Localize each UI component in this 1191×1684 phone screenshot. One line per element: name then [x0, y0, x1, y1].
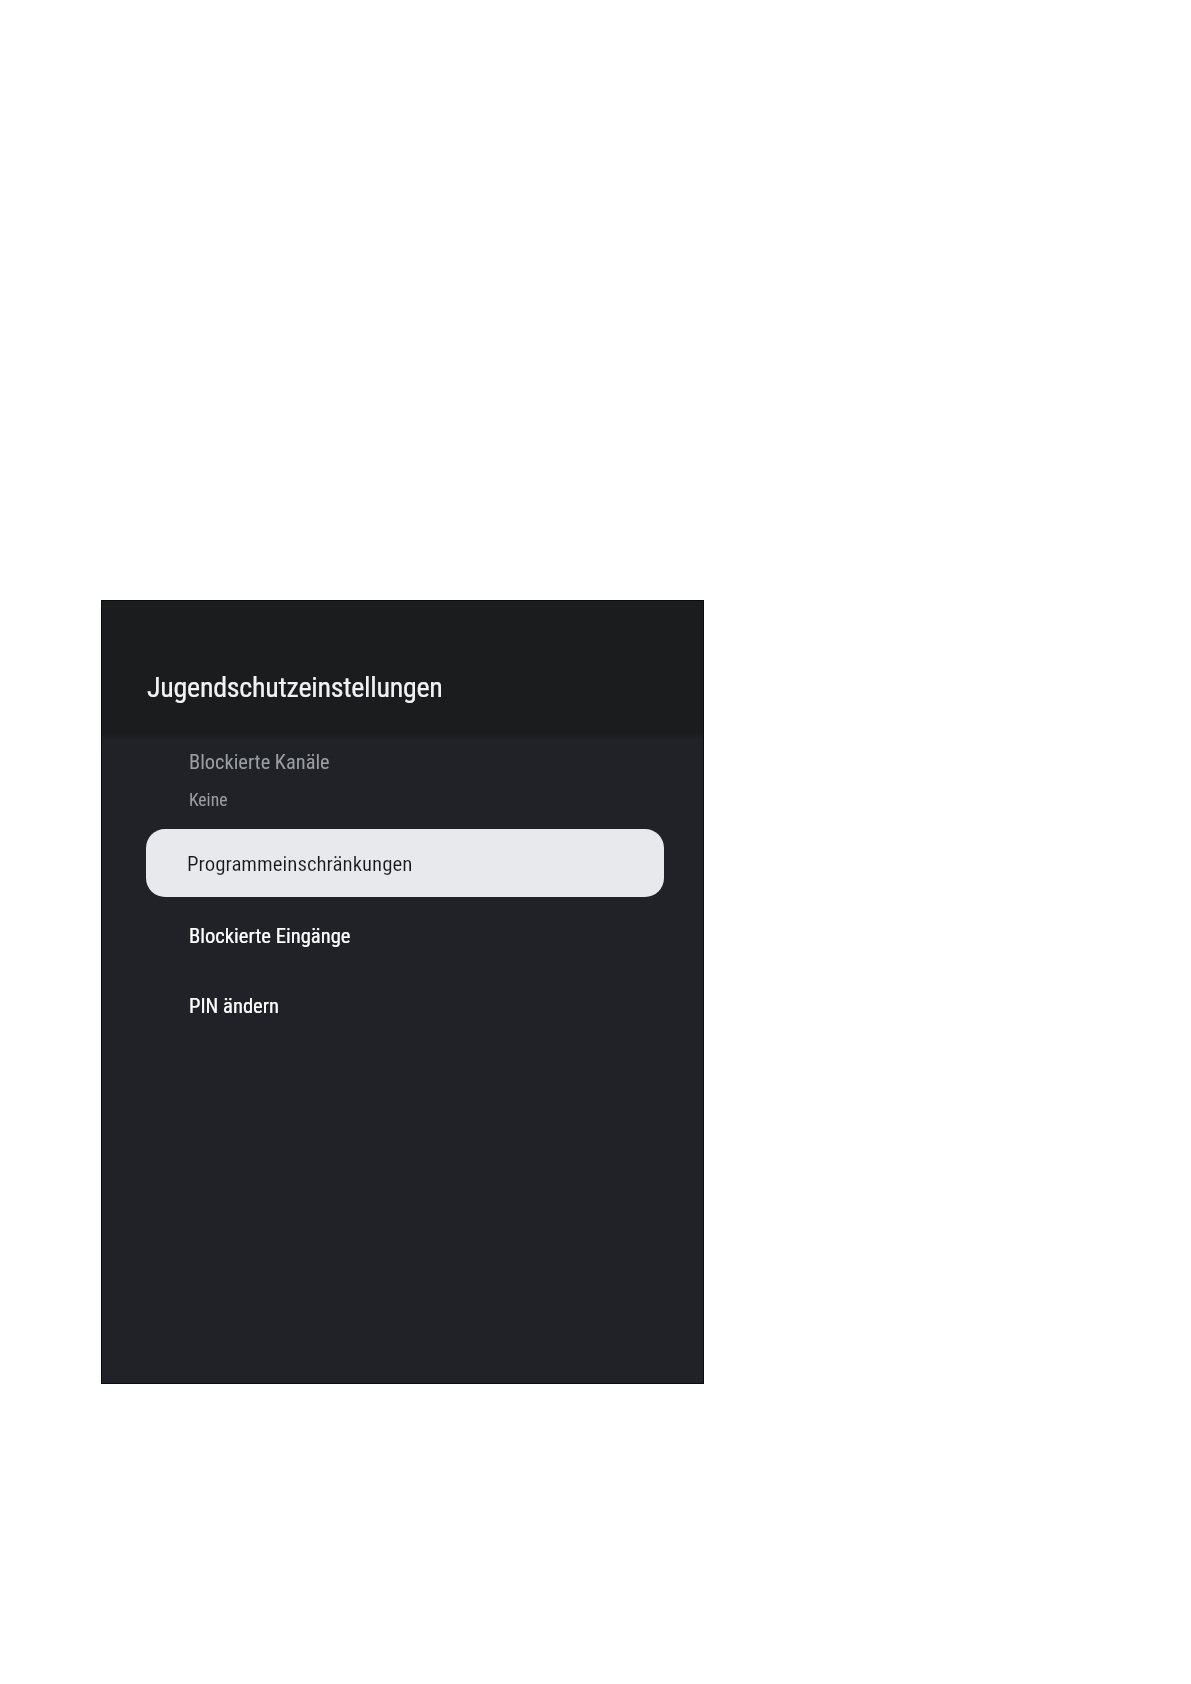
- staticText: Programmeinschränkungen: [187, 852, 413, 876]
- staticText: Keine: [189, 790, 228, 811]
- button[interactable]: Programmeinschränkungen: [146, 829, 664, 897]
- button[interactable]: Blockierte Kanäle: [102, 744, 703, 822]
- staticText: Blockierte Eingänge: [189, 924, 351, 948]
- button[interactable]: Blockierte Eingänge: [102, 913, 703, 975]
- staticText: PIN ändern: [189, 994, 280, 1018]
- button[interactable]: PIN ändern: [102, 983, 703, 1045]
- staticText: Blockierte Kanäle: [189, 750, 330, 774]
- staticText: Jugendschutzeinstellungen: [147, 671, 443, 704]
